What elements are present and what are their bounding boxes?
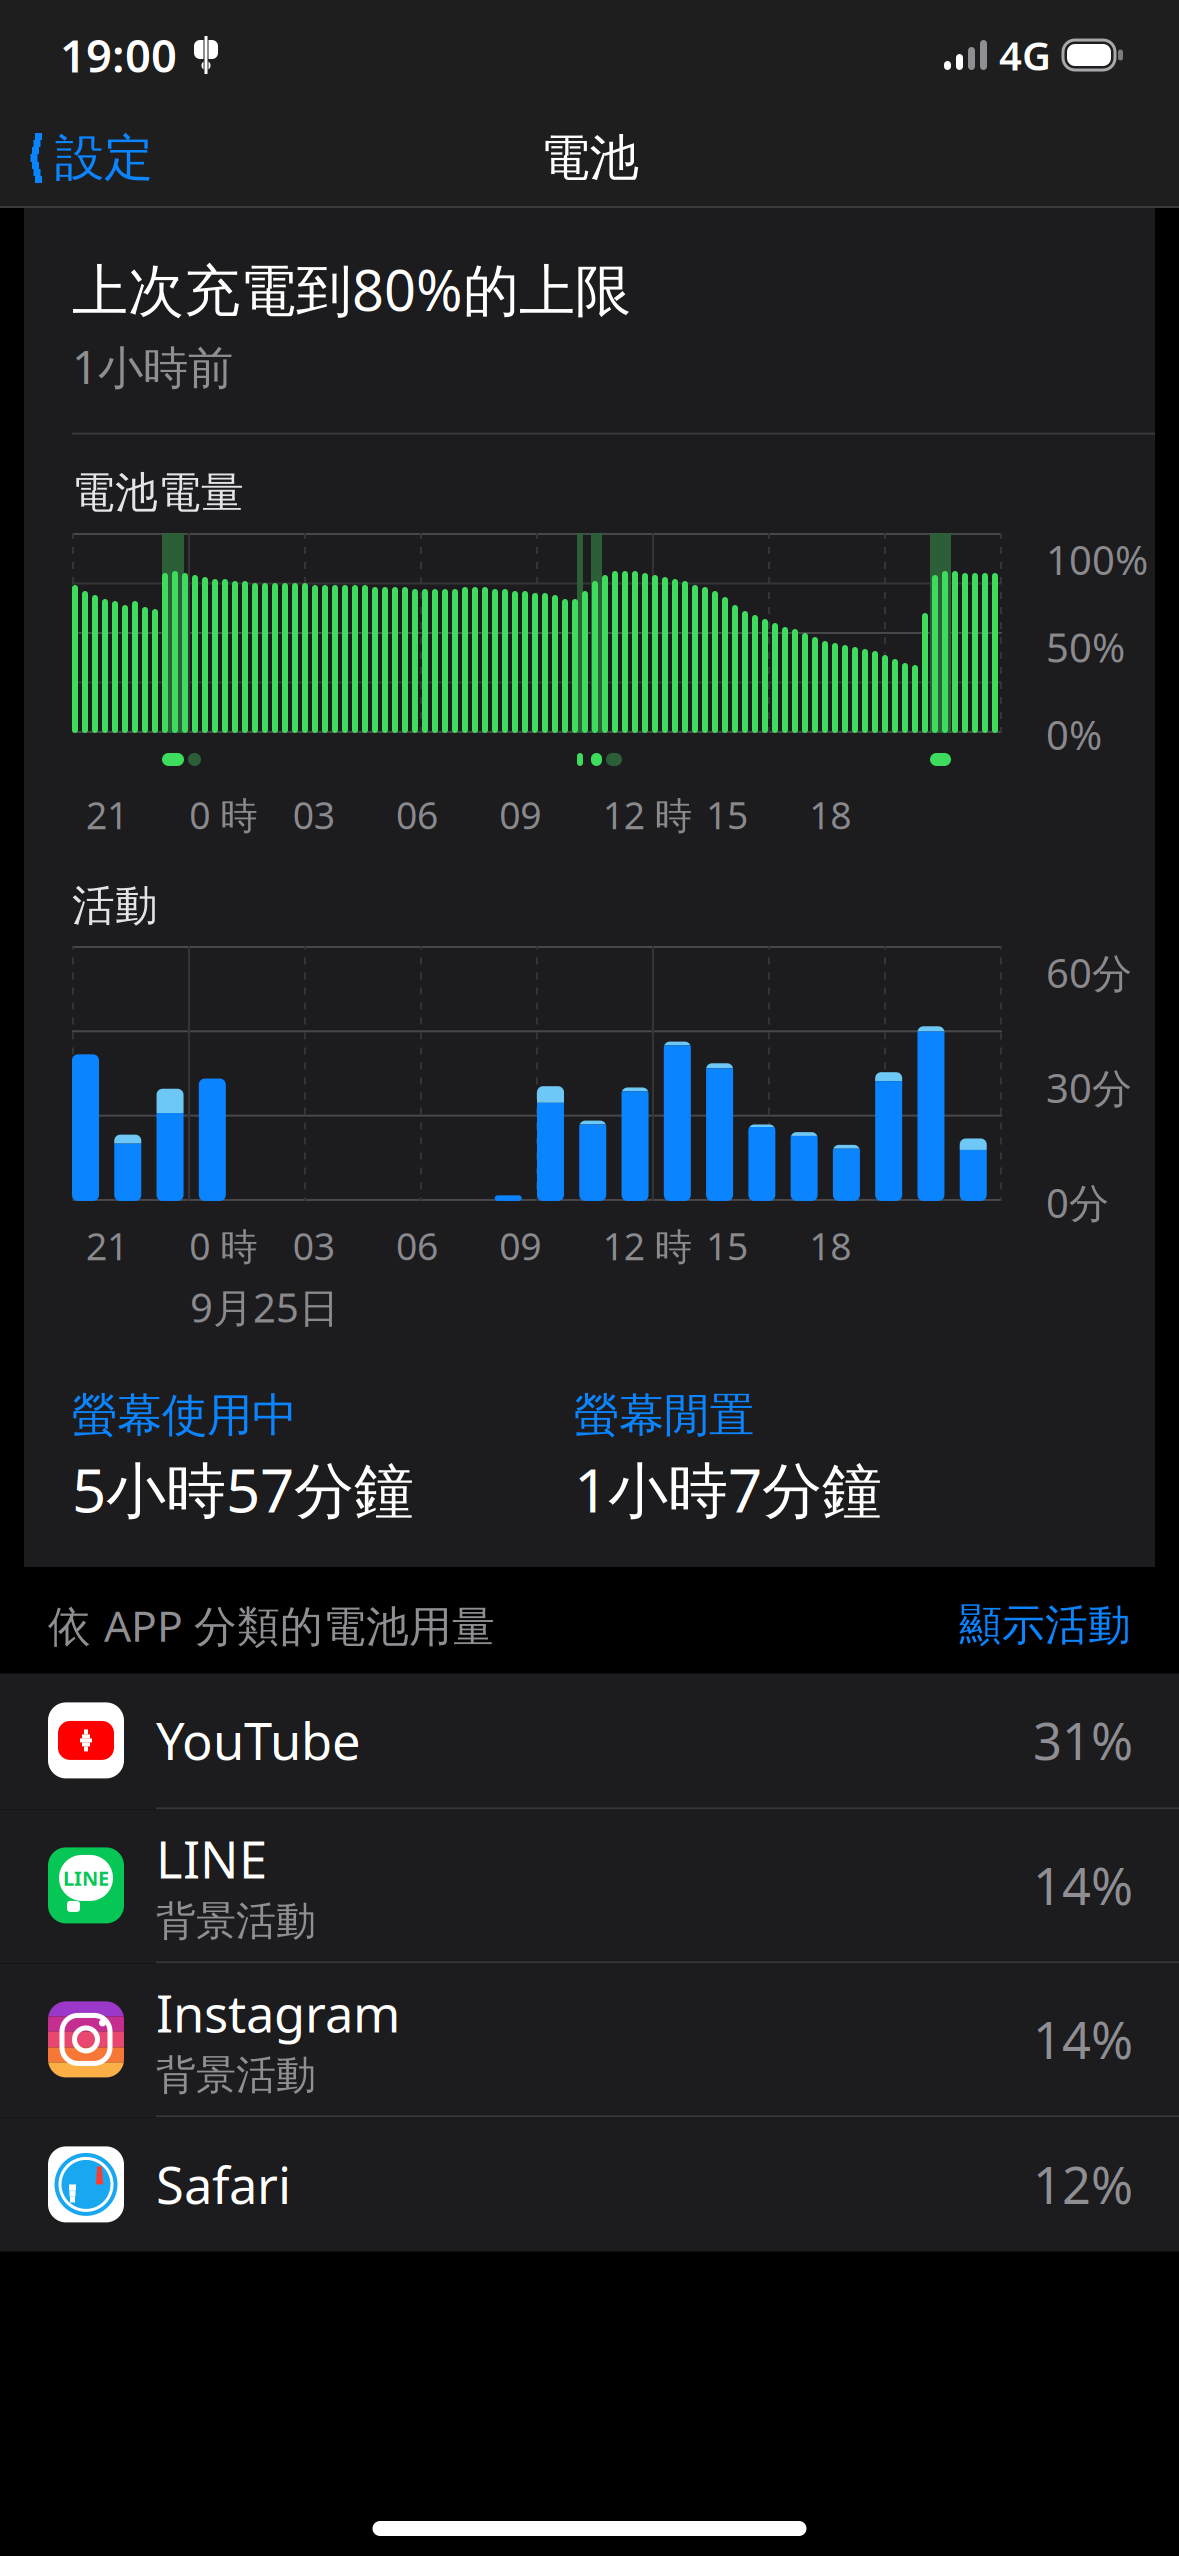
staticText: 21 xyxy=(86,1221,128,1271)
staticText: 03 xyxy=(293,1221,335,1271)
staticText: 09 xyxy=(499,790,541,840)
staticText: 0 時 xyxy=(189,790,257,840)
staticText: 15 xyxy=(706,1221,748,1271)
staticText: 1小時前 xyxy=(72,336,233,397)
staticText: 活動 xyxy=(72,880,158,932)
staticText: 依 APP 分類的電池用量 xyxy=(48,1597,495,1654)
staticText: 21 xyxy=(86,790,128,840)
staticText: 14% xyxy=(1033,2006,1133,2073)
staticText: 19:00 xyxy=(60,25,177,85)
staticText: 50% xyxy=(1046,620,1125,673)
staticText: LINE xyxy=(156,1825,267,1892)
staticText: 電池電量 xyxy=(72,467,244,519)
button[interactable]: 顯示活動 xyxy=(935,1591,1131,1659)
staticText: YouTube xyxy=(156,1707,361,1774)
staticText: 18 xyxy=(809,1221,851,1271)
staticText: 12 時 xyxy=(603,790,692,840)
staticText: 螢幕閒置 xyxy=(574,1388,754,1443)
staticText: 螢幕使用中 xyxy=(72,1388,297,1443)
staticText: 12% xyxy=(1033,2151,1133,2218)
staticText: 15 xyxy=(706,790,748,840)
button[interactable]: YouTube xyxy=(0,1673,1179,1809)
staticText: 06 xyxy=(396,1221,438,1271)
staticText: 背景活動 xyxy=(156,2050,316,2100)
staticText: 0 時 xyxy=(189,1221,257,1271)
staticText: 09 xyxy=(499,1221,541,1271)
button[interactable]: Safari xyxy=(0,2117,1179,2251)
staticText: 100% xyxy=(1046,533,1148,586)
staticText: Instagram xyxy=(156,1979,400,2046)
staticText: 30分 xyxy=(1046,1061,1132,1114)
staticText: Safari xyxy=(156,2151,291,2218)
button[interactable]: LINE xyxy=(0,1809,1179,1963)
staticText: 4G xyxy=(999,28,1051,81)
staticText: LINE xyxy=(63,1865,109,1891)
staticText: 9月25日 xyxy=(190,1280,339,1334)
staticText: 0分 xyxy=(1046,1176,1109,1229)
staticText: 背景活動 xyxy=(156,1896,316,1946)
staticText: 31% xyxy=(1033,1707,1133,1774)
staticText: 5小時57分鐘 xyxy=(72,1449,414,1529)
staticText: 18 xyxy=(809,790,851,840)
staticText: 顯示活動 xyxy=(959,1599,1131,1651)
staticText: 設定 xyxy=(55,128,153,188)
staticText: 03 xyxy=(293,790,335,840)
staticText: 06 xyxy=(396,790,438,840)
staticText: 12 時 xyxy=(603,1221,692,1271)
staticText: 1小時7分鐘 xyxy=(574,1449,882,1529)
staticText: 上次充電到80%的上限 xyxy=(72,252,631,326)
staticText: 14% xyxy=(1033,1852,1133,1919)
button[interactable]: 設定 xyxy=(0,114,171,202)
button[interactable]: Instagram xyxy=(0,1963,1179,2117)
staticText: 0% xyxy=(1046,708,1102,761)
staticText: 60分 xyxy=(1046,946,1132,999)
staticText: 電池 xyxy=(540,128,638,188)
